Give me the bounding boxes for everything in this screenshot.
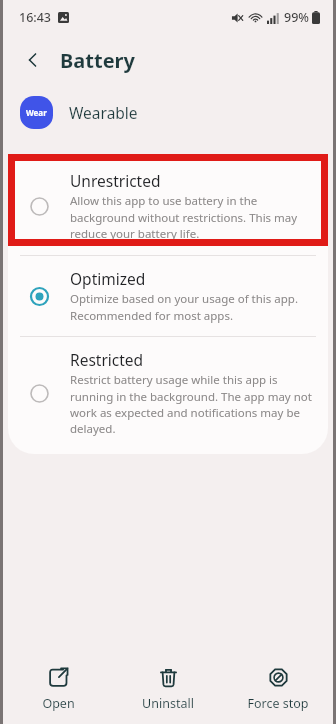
button[interactable]: Back [16, 43, 50, 77]
staticText: 99% [284, 9, 309, 26]
button[interactable]: Force stop [226, 663, 330, 716]
staticText: Wearable [69, 102, 138, 123]
button[interactable]: Unrestricted [8, 154, 328, 255]
button[interactable]: Uninstall [116, 663, 220, 716]
button[interactable]: Restricted [8, 337, 328, 454]
staticText: Optimize based on your usage of this app… [70, 291, 298, 323]
staticText: Uninstall [142, 695, 194, 712]
button[interactable]: Optimized [8, 256, 328, 336]
staticText: Restricted [70, 349, 144, 370]
staticText: Allow this app to use battery in the bac… [70, 193, 298, 241]
staticText: Restrict battery usage while this app is… [70, 372, 312, 436]
staticText: Wear [26, 107, 47, 118]
button[interactable]: Wear [20, 86, 336, 138]
staticText: Battery [60, 47, 135, 74]
staticText: 16:43 [19, 9, 52, 26]
staticText: Unrestricted [70, 170, 161, 191]
staticText: Force stop [247, 695, 309, 712]
staticText: Open [42, 695, 75, 712]
button[interactable]: Open [6, 663, 110, 716]
staticText: Optimized [70, 268, 146, 289]
